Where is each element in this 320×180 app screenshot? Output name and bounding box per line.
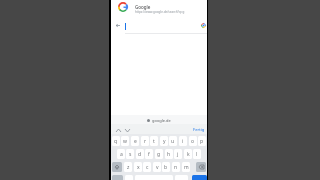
- button[interactable]: j: [174, 149, 182, 159]
- staticText: d: [138, 151, 142, 158]
- staticText: k: [187, 151, 190, 158]
- staticText: n: [174, 164, 178, 171]
- button[interactable]: [192, 175, 207, 180]
- button[interactable]: p: [198, 136, 206, 146]
- staticText: https://www.google.de/search?q=g: [135, 10, 185, 14]
- staticText: z: [127, 164, 130, 171]
- staticText: t: [153, 138, 155, 145]
- button[interactable]: y: [160, 136, 168, 146]
- staticText: q: [114, 138, 118, 145]
- staticText: r: [144, 138, 147, 145]
- button[interactable]: c: [143, 162, 151, 172]
- button[interactable]: n: [172, 162, 180, 172]
- staticText: google.de: [152, 118, 171, 123]
- staticText: m: [184, 164, 189, 171]
- staticText: j: [177, 151, 179, 158]
- button[interactable]: [112, 162, 122, 172]
- button[interactable]: q: [112, 136, 120, 146]
- staticText: l: [196, 151, 198, 158]
- button[interactable]: o: [189, 136, 197, 146]
- button[interactable]: [112, 175, 123, 180]
- button[interactable]: s: [126, 149, 134, 159]
- button[interactable]: m: [182, 162, 190, 172]
- staticText: h: [167, 151, 171, 158]
- button[interactable]: i: [179, 136, 187, 146]
- staticText: s: [129, 151, 132, 158]
- staticText: w: [123, 138, 127, 145]
- button[interactable]: [111, 17, 207, 33]
- staticText: u: [171, 138, 175, 145]
- button[interactable]: k: [184, 149, 192, 159]
- button[interactable]: g: [155, 149, 163, 159]
- button[interactable]: v: [153, 162, 161, 172]
- staticText: o: [191, 138, 195, 145]
- button[interactable]: x: [134, 162, 142, 172]
- button[interactable]: [116, 129, 121, 132]
- button[interactable]: d: [136, 149, 144, 159]
- button[interactable]: b: [162, 162, 170, 172]
- staticText: a: [120, 151, 123, 158]
- staticText: p: [200, 138, 204, 145]
- staticText: x: [137, 164, 140, 171]
- button[interactable]: h: [165, 149, 173, 159]
- staticText: v: [156, 164, 159, 171]
- staticText: f: [148, 151, 150, 158]
- staticText: c: [146, 164, 149, 171]
- button[interactable]: u: [169, 136, 177, 146]
- button[interactable]: [196, 162, 206, 172]
- staticText: e: [134, 138, 137, 145]
- button[interactable]: t: [150, 136, 158, 146]
- button[interactable]: Fertig: [193, 127, 205, 133]
- staticText: b: [164, 164, 168, 171]
- button[interactable]: e: [131, 136, 139, 146]
- staticText: g: [157, 151, 161, 158]
- staticText: Google: [135, 4, 151, 10]
- staticText: y: [163, 138, 166, 145]
- button[interactable]: r: [141, 136, 149, 146]
- button[interactable]: google.de: [147, 118, 171, 123]
- button[interactable]: f: [145, 149, 153, 159]
- button[interactable]: [125, 129, 130, 132]
- button[interactable]: [116, 24, 120, 27]
- button[interactable]: a: [117, 149, 125, 159]
- button[interactable]: l: [193, 149, 201, 159]
- staticText: i: [182, 138, 184, 145]
- button[interactable]: w: [121, 136, 129, 146]
- button[interactable]: [201, 23, 206, 28]
- button[interactable]: z: [124, 162, 132, 172]
